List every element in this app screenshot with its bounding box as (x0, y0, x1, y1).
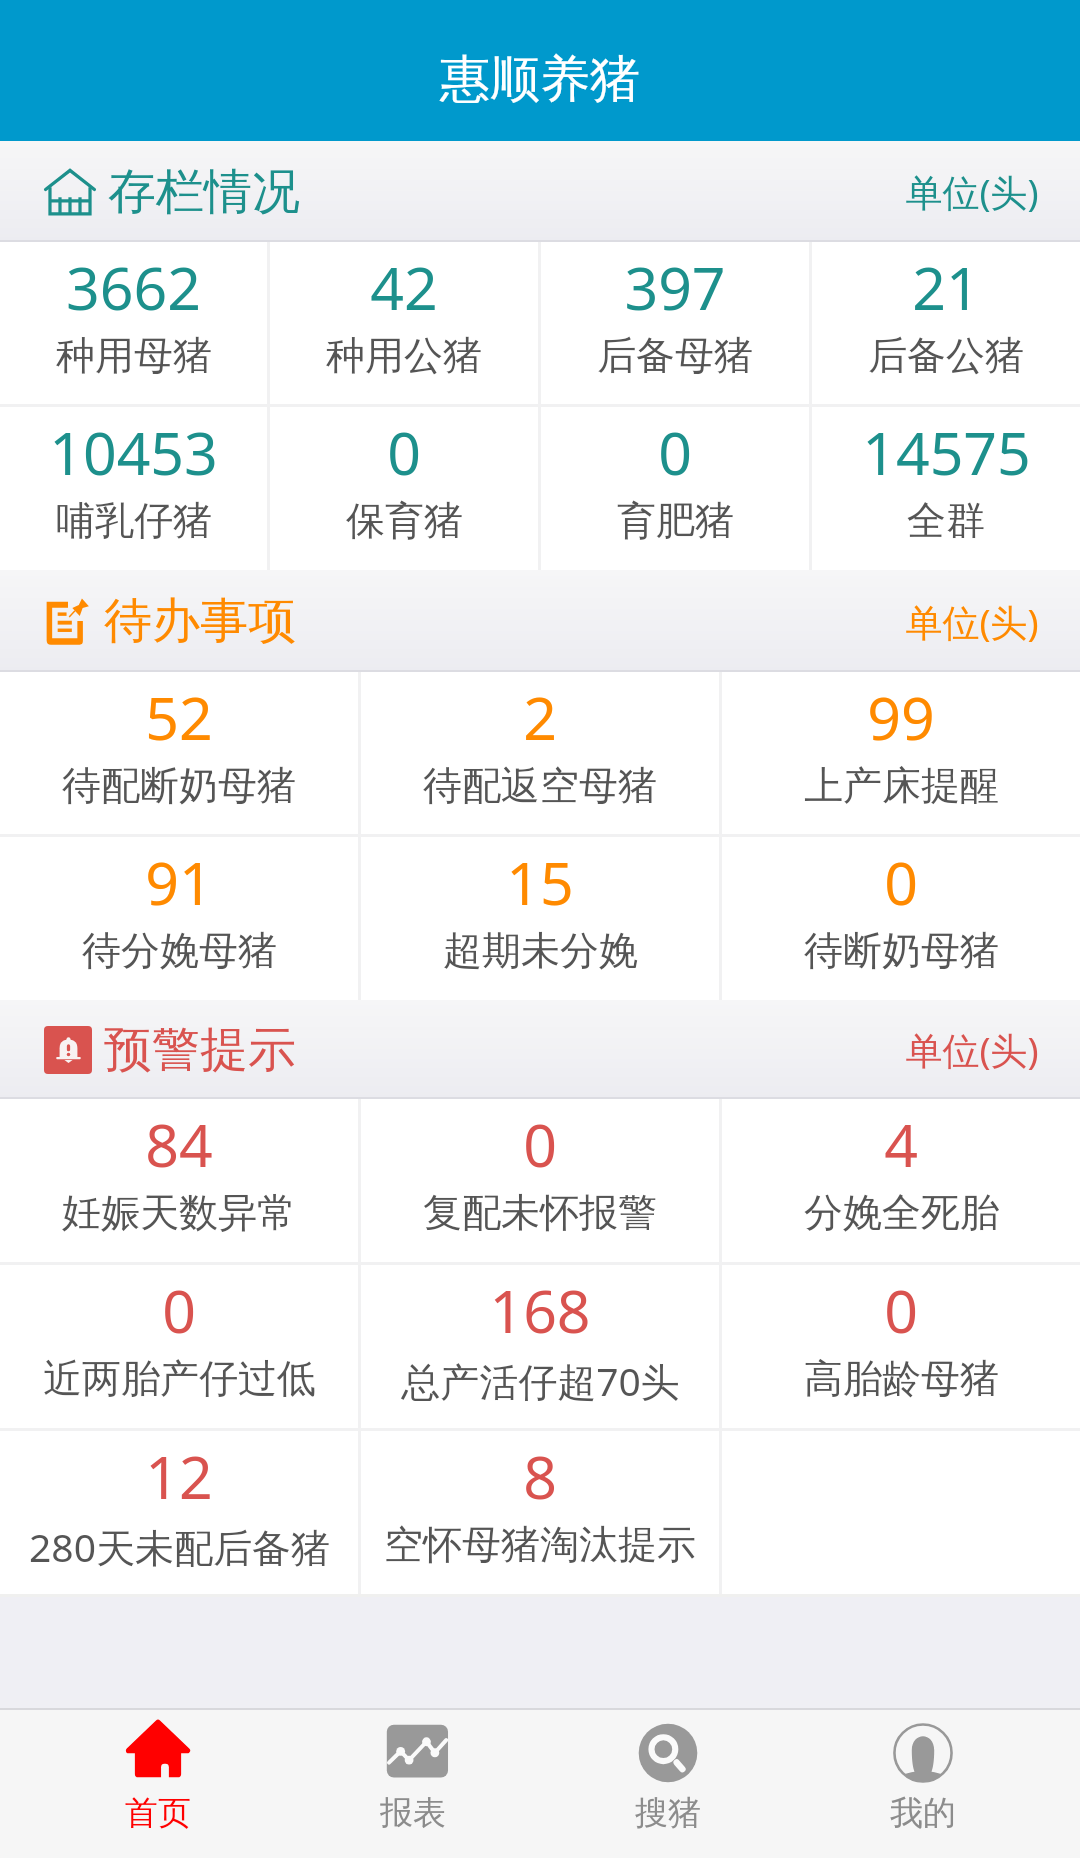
button[interactable]: 8 (361, 1431, 719, 1569)
staticText: 2 (523, 677, 557, 757)
button[interactable]: 首页 (30, 1710, 285, 1858)
button[interactable]: 2 (361, 672, 719, 810)
staticText: 8 (523, 1436, 557, 1516)
staticText: 4 (884, 1104, 918, 1184)
staticText: 存栏情况 (108, 162, 300, 222)
staticText: 预警提示 (104, 1020, 296, 1080)
staticText: 后备母猪 (597, 331, 753, 380)
button[interactable]: 91 (0, 837, 358, 975)
staticText: 妊娠天数异常 (62, 1188, 296, 1237)
staticText: 高胎龄母猪 (804, 1354, 999, 1403)
other: 首页 (124, 1719, 192, 1787)
staticText: 10453 (49, 412, 218, 492)
staticText: 后备公猪 (868, 331, 1024, 380)
staticText: 168 (489, 1270, 591, 1350)
staticText: 21 (912, 247, 980, 327)
staticText: 保育猪 (346, 496, 463, 545)
other: 报表 (379, 1719, 447, 1787)
staticText: 上产床提醒 (804, 761, 999, 810)
button[interactable]: 397 (541, 242, 809, 380)
button[interactable]: 99 (722, 672, 1080, 810)
staticText: 搜猪 (635, 1792, 701, 1834)
staticText: 15 (506, 842, 574, 922)
staticText: 14575 (862, 412, 1031, 492)
staticText: 分娩全死胎 (804, 1188, 999, 1237)
staticText: 397 (624, 247, 726, 327)
staticText: 近两胎产仔过低 (43, 1354, 316, 1403)
button[interactable]: 报表 (285, 1710, 540, 1858)
button[interactable]: 0 (722, 837, 1080, 975)
staticText: 惠顺养猪 (440, 48, 640, 111)
button[interactable]: 10453 (0, 407, 267, 545)
staticText: 复配未怀报警 (423, 1188, 657, 1237)
button[interactable]: 168 (361, 1265, 719, 1407)
staticText: 我的 (890, 1792, 956, 1834)
staticText: 0 (884, 1270, 918, 1350)
button[interactable]: 14575 (812, 407, 1080, 545)
staticText: 3662 (66, 247, 201, 327)
button[interactable]: 4 (722, 1099, 1080, 1237)
staticText: 0 (884, 842, 918, 922)
button[interactable]: 0 (722, 1265, 1080, 1403)
button[interactable]: 0 (0, 1265, 358, 1403)
button[interactable]: 3662 (0, 242, 267, 380)
staticText: 待分娩母猪 (82, 926, 277, 975)
staticText: 0 (658, 412, 692, 492)
staticText: 91 (145, 842, 213, 922)
staticText: 总产活仔超70头 (401, 1354, 680, 1407)
staticText: 0 (523, 1104, 557, 1184)
staticText: 待配断奶母猪 (62, 761, 296, 810)
button[interactable]: 0 (361, 1099, 719, 1237)
staticText: 12 (145, 1436, 213, 1516)
staticText: 单位(头) (905, 596, 1039, 647)
staticText: 待配返空母猪 (423, 761, 657, 810)
staticText: 待断奶母猪 (804, 926, 999, 975)
staticText: 种用公猪 (326, 331, 482, 380)
staticText: 280天未配后备猪 (29, 1520, 330, 1573)
staticText: 99 (867, 677, 935, 757)
staticText: 84 (145, 1104, 213, 1184)
staticText: 42 (370, 247, 438, 327)
staticText: 超期未分娩 (443, 926, 638, 975)
button[interactable]: 我的 (795, 1710, 1050, 1858)
staticText: 52 (145, 677, 213, 757)
staticText: 哺乳仔猪 (56, 496, 212, 545)
staticText: 单位(头) (905, 166, 1039, 217)
staticText: 育肥猪 (617, 496, 734, 545)
button[interactable]: 12 (0, 1431, 358, 1573)
button[interactable]: 15 (361, 837, 719, 975)
other: 搜猪 (634, 1719, 702, 1787)
button[interactable]: 0 (270, 407, 538, 545)
button[interactable]: 52 (0, 672, 358, 810)
staticText: 种用母猪 (56, 331, 212, 380)
staticText: 单位(头) (905, 1024, 1039, 1075)
button[interactable]: 0 (541, 407, 809, 545)
staticText: 首页 (125, 1792, 191, 1834)
button[interactable]: 84 (0, 1099, 358, 1237)
staticText: 报表 (380, 1792, 446, 1834)
staticText: 全群 (907, 496, 985, 545)
button[interactable]: 搜猪 (540, 1710, 795, 1858)
button[interactable]: 42 (270, 242, 538, 380)
other: 我的 (889, 1719, 957, 1787)
button[interactable]: 21 (812, 242, 1080, 380)
staticText: 0 (387, 412, 421, 492)
staticText: 0 (162, 1270, 196, 1350)
staticText: 空怀母猪淘汰提示 (384, 1520, 696, 1569)
staticText: 待办事项 (104, 591, 296, 651)
